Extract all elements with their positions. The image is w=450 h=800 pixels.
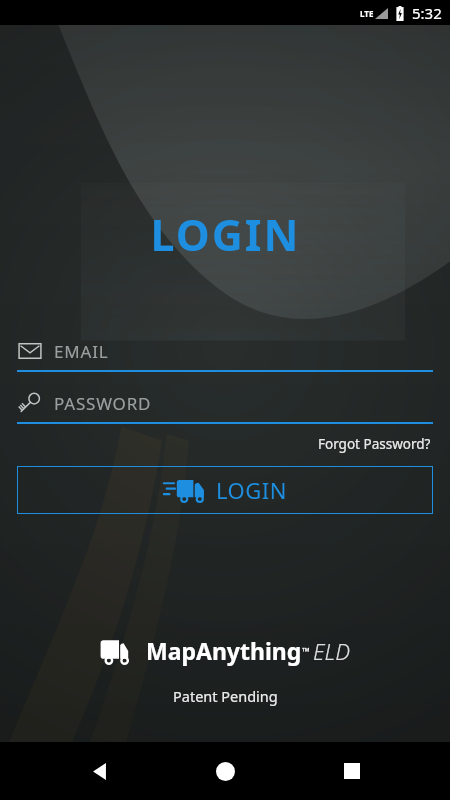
staticText: LTE (360, 8, 374, 19)
staticText: ELD (313, 636, 351, 666)
button[interactable]: Back (71, 743, 127, 799)
button[interactable]: Home (197, 743, 253, 799)
staticText: Forgot Password? (318, 435, 431, 453)
staticText: PASSWORD (54, 392, 152, 415)
staticText: ™ (302, 644, 310, 658)
staticText: LOGIN (150, 205, 301, 264)
staticText: Patent Pending (173, 686, 278, 706)
button[interactable]: LOGIN (17, 466, 433, 514)
staticText: 5:32 (412, 3, 442, 23)
staticText: LOGIN (216, 475, 287, 505)
button[interactable]: EMAIL (17, 336, 433, 372)
staticText: MapAnything (146, 635, 302, 666)
staticText: EMAIL (54, 340, 109, 363)
button[interactable]: Recent apps (324, 743, 380, 799)
button[interactable]: PASSWORD (17, 388, 433, 424)
button[interactable]: Forgot Password? (316, 433, 433, 455)
